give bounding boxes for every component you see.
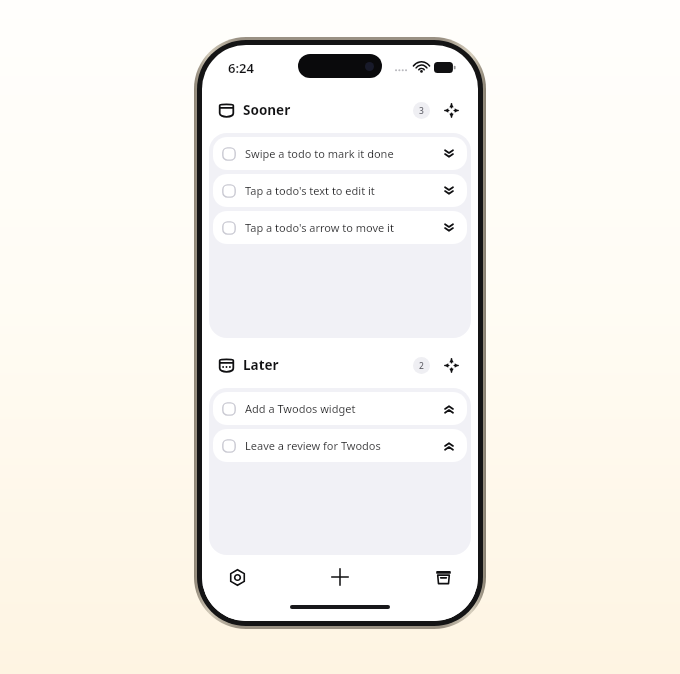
button[interactable]: Toggle Leave a review for Twodos bbox=[213, 429, 467, 462]
button[interactable]: Archive bbox=[428, 562, 458, 592]
staticText: Tap a todo's arrow to move it bbox=[245, 220, 440, 235]
button[interactable]: Move to Sooner bbox=[440, 400, 458, 418]
staticText: Leave a review for Twodos bbox=[245, 438, 440, 453]
button[interactable]: Toggle Add a Twodos widget bbox=[213, 392, 467, 425]
button[interactable]: Toggle Swipe a todo to mark it done bbox=[213, 137, 467, 170]
button[interactable]: Toggle Tap a todo's arrow to move it bbox=[213, 211, 467, 244]
button[interactable]: Toggle Leave a review for Twodos bbox=[222, 439, 236, 453]
staticText: 2 bbox=[419, 360, 424, 372]
button[interactable]: Move to Sooner bbox=[440, 437, 458, 455]
button[interactable]: Toggle Swipe a todo to mark it done bbox=[222, 147, 236, 161]
button[interactable]: Toggle Add a Twodos widget bbox=[222, 402, 236, 416]
button[interactable]: Settings bbox=[222, 562, 252, 592]
button[interactable]: Toggle Tap a todo's text to edit it bbox=[213, 174, 467, 207]
staticText: Later bbox=[243, 356, 279, 374]
button[interactable]: Move to Later bbox=[440, 219, 458, 237]
staticText: Swipe a todo to mark it done bbox=[245, 146, 440, 161]
button[interactable]: Move to Later bbox=[440, 145, 458, 163]
button[interactable]: Toggle Tap a todo's arrow to move it bbox=[222, 221, 236, 235]
button[interactable]: 2 bbox=[413, 357, 430, 374]
button[interactable]: Reorder list bbox=[440, 99, 462, 121]
button[interactable]: Move to Later bbox=[440, 182, 458, 200]
button[interactable]: Later bbox=[218, 356, 285, 374]
button[interactable]: 3 bbox=[413, 102, 430, 119]
staticText: 6:24 bbox=[228, 59, 254, 77]
staticText: 3 bbox=[419, 105, 424, 117]
staticText: Tap a todo's text to edit it bbox=[245, 183, 440, 198]
button[interactable]: Add todo bbox=[323, 560, 357, 594]
button[interactable]: Toggle Tap a todo's text to edit it bbox=[222, 184, 236, 198]
button[interactable]: Reorder list bbox=[440, 354, 462, 376]
staticText: Sooner bbox=[243, 101, 291, 119]
button[interactable]: Sooner bbox=[218, 101, 297, 119]
staticText: Add a Twodos widget bbox=[245, 401, 440, 416]
